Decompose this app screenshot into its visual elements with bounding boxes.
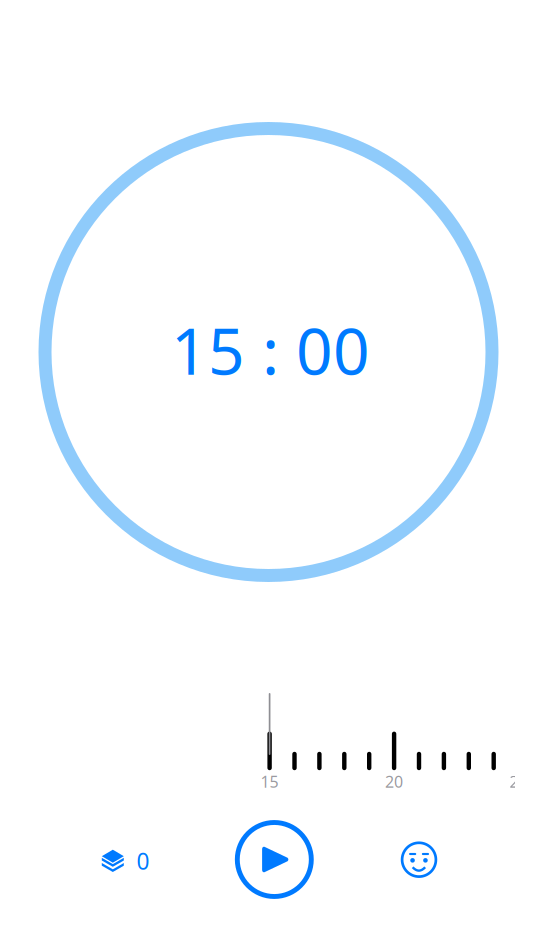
button[interactable]: Mood	[390, 831, 448, 889]
staticText: 0	[136, 846, 149, 876]
button[interactable]: 0	[80, 829, 172, 893]
staticText: 20	[385, 771, 403, 792]
staticText: 15	[261, 771, 279, 792]
button[interactable]: Start timer	[230, 815, 318, 903]
button[interactable]: Duration, 15 minutes	[240, 690, 514, 800]
staticText: 25	[510, 771, 528, 792]
staticText: 15 : 00	[171, 307, 370, 392]
